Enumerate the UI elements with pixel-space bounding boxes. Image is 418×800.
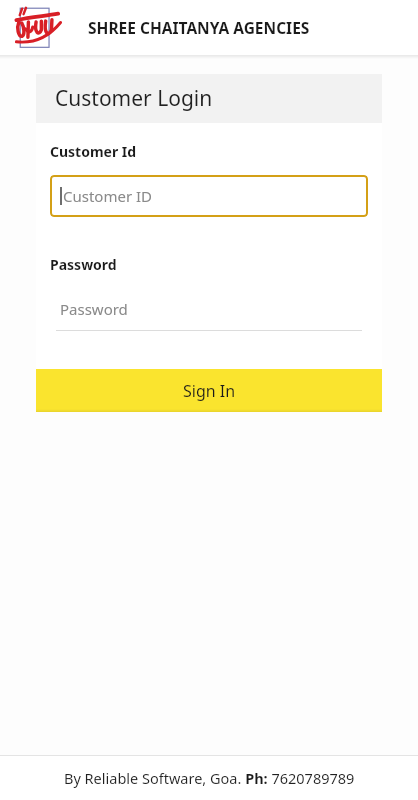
other: Chaitanya logo [14, 5, 62, 51]
staticText: Customer ID [63, 186, 153, 206]
staticText: Customer Id [50, 142, 137, 161]
staticText: Customer Login [55, 84, 213, 113]
staticText: By Reliable Software, Goa. Ph: 762078978… [64, 768, 355, 788]
staticText: Sign In [183, 380, 236, 402]
button[interactable]: Password [50, 296, 368, 331]
button[interactable]: Sign In [36, 369, 382, 412]
staticText: Password [50, 255, 117, 274]
staticText: Password [60, 299, 128, 319]
button[interactable]: Customer ID [50, 175, 368, 217]
staticText: SHREE CHAITANYA AGENCIES [88, 17, 310, 38]
